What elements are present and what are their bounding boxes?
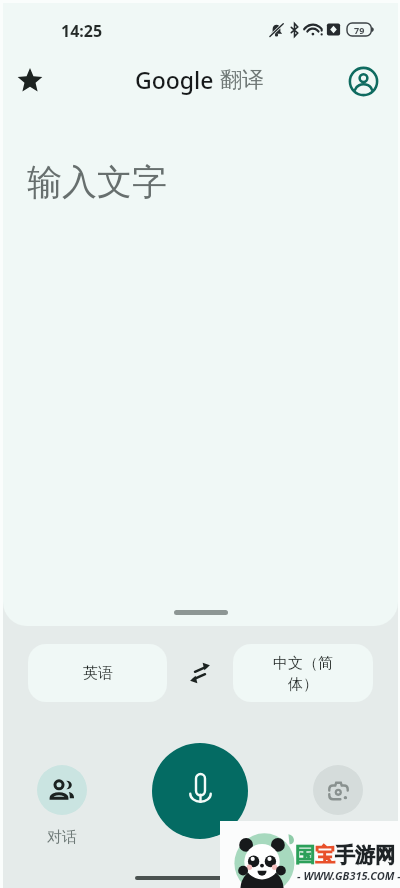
button[interactable]: Camera [313,765,363,815]
button[interactable]: Swap languages [167,644,233,702]
staticText: 中文（简 体） [273,654,333,693]
staticText: 79 [354,24,365,36]
staticText: Google [135,64,214,95]
button[interactable]: 英语 [28,644,167,702]
button[interactable]: Account [346,64,380,98]
staticText: 宝 [315,843,335,868]
button[interactable]: 对话 [25,765,99,847]
staticText: 国 [295,843,315,868]
staticText: 英语 [83,664,113,683]
button[interactable]: Microphone [152,743,248,839]
staticText: 14:25 [61,20,103,42]
staticText: 对话 [47,828,77,847]
staticText: 输入文字 [27,160,167,204]
staticText: 翻译 [220,66,264,94]
staticText: - WWW.GB315.COM - [297,868,400,883]
button[interactable]: 中文（简 体） [233,644,373,702]
button[interactable]: Saved [10,60,50,100]
staticText: 手游网 [335,843,395,868]
